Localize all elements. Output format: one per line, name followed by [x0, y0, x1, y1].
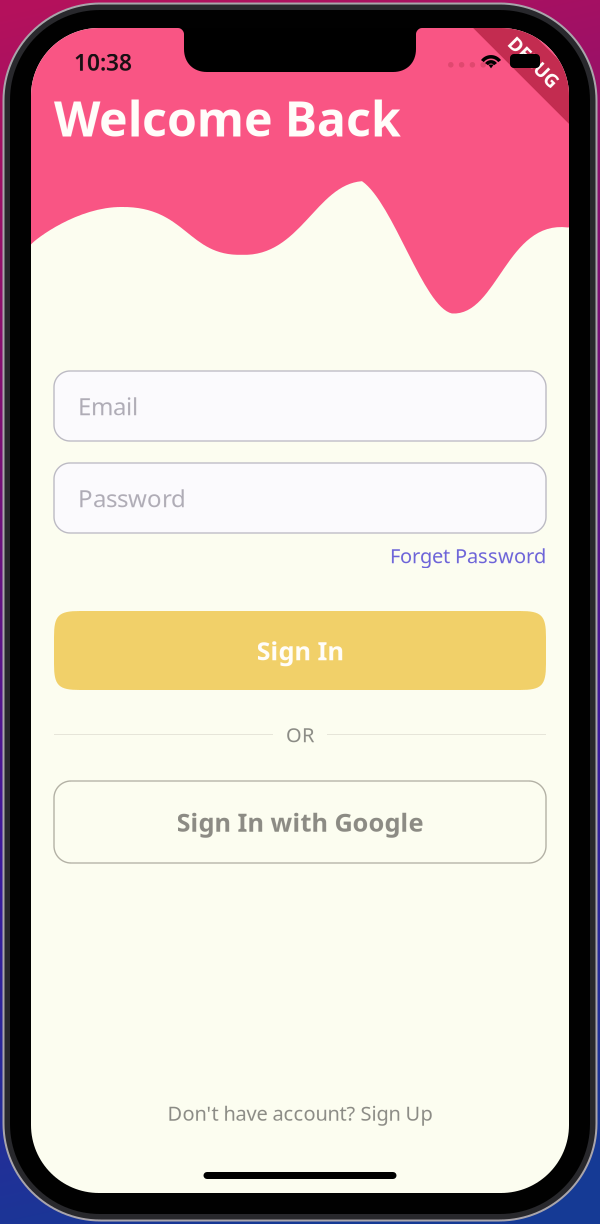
button[interactable]: Password	[54, 463, 546, 533]
staticText: OR	[286, 721, 314, 748]
button[interactable]: Email	[54, 371, 546, 441]
staticText: Welcome Back	[54, 86, 401, 150]
staticText: 10:38	[74, 47, 132, 77]
button[interactable]: Sign In with Google	[54, 781, 546, 863]
staticText: Forget Password	[390, 542, 546, 569]
staticText: Password	[78, 482, 186, 514]
staticText: Don't have account? Sign Up	[167, 1100, 432, 1126]
staticText: Sign In with Google	[176, 805, 423, 839]
staticText: Email	[78, 390, 138, 422]
staticText: Sign In	[256, 634, 343, 667]
button[interactable]: Don't have account? Sign Up	[31, 1093, 569, 1133]
button[interactable]: Forget Password	[54, 533, 546, 578]
button[interactable]: Sign In	[54, 611, 546, 690]
staticText: DEBUG	[501, 53, 565, 77]
